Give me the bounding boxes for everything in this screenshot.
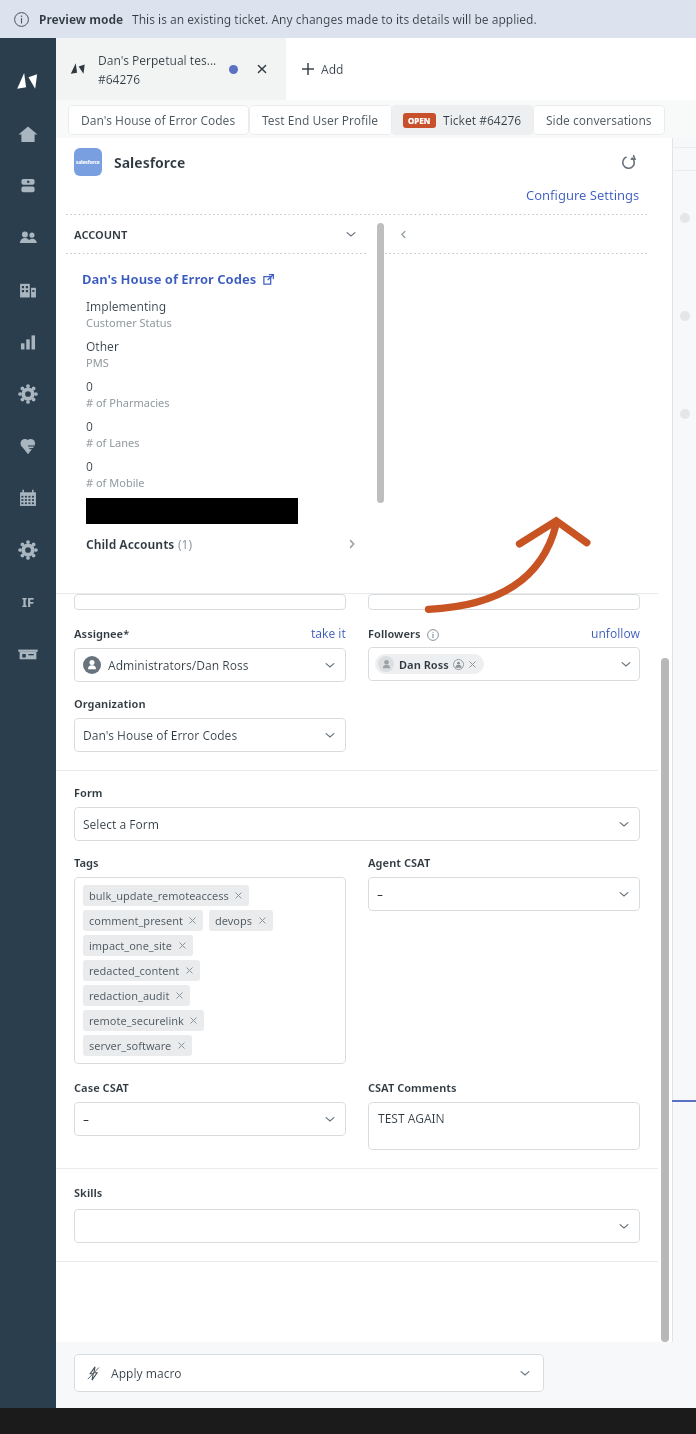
button[interactable]: OPEN <box>392 105 533 135</box>
button[interactable]: server_software <box>83 1035 192 1056</box>
staticText: This is an existing ticket. Any changes … <box>132 11 537 27</box>
button[interactable]: Dan's House of Error Codes <box>68 105 249 135</box>
button[interactable]: Collapse <box>393 224 413 244</box>
staticText: 0 <box>86 418 93 434</box>
button[interactable]: take it <box>311 625 346 641</box>
staticText: Followers <box>368 626 421 641</box>
staticText: Case CSAT <box>74 1080 129 1095</box>
staticText: impact_one_site <box>89 938 173 953</box>
button[interactable]: Zendesk <box>2 56 54 108</box>
button[interactable]: devops <box>209 910 273 931</box>
button[interactable]: ACCOUNT <box>56 215 376 253</box>
staticText: Organization <box>74 696 146 711</box>
staticText: (1) <box>178 536 346 552</box>
staticText: redaction_audit <box>89 988 170 1003</box>
staticText: OPEN <box>408 115 431 126</box>
staticText: Other <box>86 338 119 354</box>
button[interactable]: bulk_update_remoteaccess <box>74 877 346 1064</box>
button[interactable]: Side conversations <box>533 105 665 135</box>
button[interactable]: – <box>74 1102 346 1136</box>
staticText: Dan's House of Error Codes <box>82 270 257 288</box>
button[interactable]: TEST AGAIN <box>368 1102 640 1150</box>
button[interactable]: Refresh <box>616 150 640 174</box>
staticText: Dan's House of Error Codes <box>81 112 236 128</box>
button[interactable]: redaction_audit <box>83 985 190 1006</box>
staticText: IF <box>22 593 35 611</box>
staticText: TEST AGAIN <box>378 1110 445 1126</box>
button[interactable]: Child Accounts <box>86 536 358 552</box>
staticText: Customer Status <box>86 315 172 330</box>
staticText: Implementing <box>86 298 167 314</box>
staticText: #64276 <box>98 71 141 87</box>
staticText: remote_securelink <box>89 1013 184 1028</box>
staticText: Salesforce <box>114 153 616 172</box>
staticText: Agent CSAT <box>368 855 431 870</box>
staticText: Select a Form <box>83 816 617 832</box>
button[interactable]: Dan's House of Error Codes <box>74 718 346 752</box>
button[interactable]: Talk <box>2 420 54 472</box>
staticText: Configure Settings <box>526 186 640 204</box>
button[interactable]: Views <box>2 160 54 212</box>
staticText: # of Mobile <box>86 475 145 490</box>
button[interactable]: Dan Ross <box>368 647 640 681</box>
staticText: salesforce <box>76 159 100 166</box>
button[interactable]: Organizations <box>2 264 54 316</box>
button[interactable]: Apply macro <box>74 1354 544 1392</box>
button[interactable]: impact_one_site <box>83 935 193 956</box>
staticText: ACCOUNT <box>74 227 344 242</box>
button[interactable]: Settings <box>2 524 54 576</box>
staticText: Test End User Profile <box>262 112 379 128</box>
button[interactable]: remote_securelink <box>83 1010 204 1031</box>
staticText: bulk_update_remoteaccess <box>89 888 229 903</box>
staticText: Child Accounts <box>86 536 178 552</box>
staticText: Form <box>74 785 103 800</box>
staticText: Preview mode <box>39 11 124 27</box>
staticText: CSAT Comments <box>368 1080 457 1095</box>
button[interactable]: Configure Settings <box>526 186 640 204</box>
staticText: server_software <box>89 1038 172 1053</box>
staticText: Dan Ross <box>399 657 449 672</box>
staticText: Assignee* <box>74 626 130 641</box>
button[interactable]: comment_present <box>83 910 203 931</box>
staticText: devops <box>215 913 253 928</box>
staticText: PMS <box>86 355 109 370</box>
staticText: Skills <box>74 1185 103 1200</box>
button[interactable]: Dan's House of Error Codes <box>82 270 274 288</box>
button[interactable]: Close tab <box>252 59 272 79</box>
staticText: Dan's House of Error Codes <box>83 727 323 743</box>
button[interactable]: bulk_update_remoteaccess <box>83 885 249 906</box>
staticText: redacted_content <box>89 963 180 978</box>
button[interactable] <box>74 1209 640 1243</box>
staticText: comment_present <box>89 913 183 928</box>
button[interactable]: redacted_content <box>83 960 200 981</box>
button[interactable]: Home <box>2 108 54 160</box>
button[interactable]: Marketplace <box>2 628 54 680</box>
staticText: # of Pharmacies <box>86 395 170 410</box>
button[interactable]: – <box>368 877 640 911</box>
staticText: take it <box>311 625 346 641</box>
staticText: Ticket #64276 <box>443 112 522 128</box>
button[interactable]: Administrators/Dan Ross <box>74 648 346 682</box>
staticText: # of Lanes <box>86 435 140 450</box>
staticText: Apply macro <box>111 1365 518 1381</box>
button[interactable]: unfollow <box>591 625 640 641</box>
staticText: Side conversations <box>546 112 652 128</box>
button[interactable]: Select a Form <box>74 807 640 841</box>
button[interactable]: Test End User Profile <box>249 105 392 135</box>
button[interactable]: Reporting <box>2 316 54 368</box>
button[interactable]: Calendar <box>2 472 54 524</box>
staticText: – <box>83 1111 323 1127</box>
staticText: 0 <box>86 378 93 394</box>
button[interactable]: Admin <box>2 368 54 420</box>
button[interactable]: Explore <box>2 576 54 628</box>
staticText: 0 <box>86 458 93 474</box>
staticText: Dan's Perpetual tes... <box>98 52 217 68</box>
staticText: Administrators/Dan Ross <box>108 657 323 673</box>
button[interactable]: Add <box>286 38 360 100</box>
staticText: – <box>377 886 617 902</box>
button[interactable]: Customers <box>2 212 54 264</box>
button[interactable]: Dan's Perpetual tes... <box>56 38 286 100</box>
staticText: Add <box>321 61 344 77</box>
staticText: unfollow <box>591 625 640 641</box>
